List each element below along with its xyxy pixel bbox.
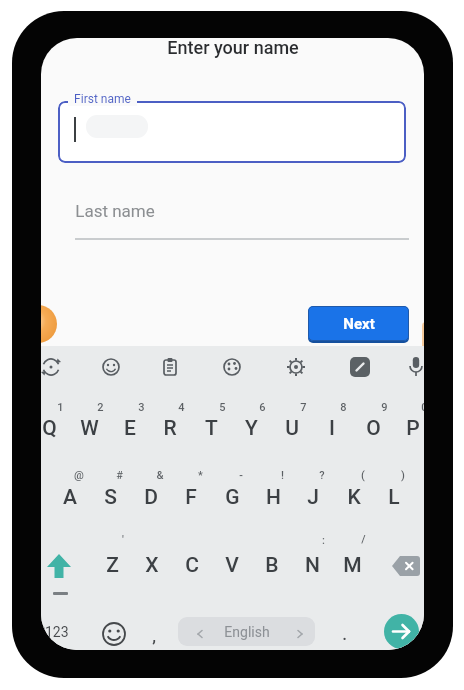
button[interactable] <box>58 198 406 242</box>
button[interactable]: N <box>292 550 332 580</box>
button[interactable] <box>350 357 370 377</box>
staticText: J <box>307 485 319 510</box>
button[interactable]: , <box>145 625 163 647</box>
staticText: A <box>63 485 77 510</box>
staticText: Y <box>245 416 258 441</box>
staticText: First name <box>74 92 131 106</box>
staticText: V <box>225 553 239 578</box>
staticText: O <box>366 416 381 441</box>
button[interactable]: ?123 <box>41 620 77 644</box>
staticText: P <box>406 416 420 441</box>
button[interactable]: P <box>393 413 424 443</box>
button[interactable]: K <box>334 482 374 512</box>
staticText: E <box>124 416 136 441</box>
staticText: 6 <box>259 401 266 414</box>
button[interactable]: English <box>178 617 315 646</box>
staticText: K <box>347 485 361 510</box>
staticText: F <box>185 485 197 510</box>
staticText: 3 <box>138 401 145 414</box>
button[interactable]: H <box>253 482 293 512</box>
staticText: Q <box>42 416 57 441</box>
staticText: ) <box>401 469 405 482</box>
button[interactable] <box>406 356 424 378</box>
button[interactable] <box>41 356 62 378</box>
staticText: ? <box>319 469 325 482</box>
staticText: D <box>144 485 158 510</box>
staticText: Next <box>343 315 375 333</box>
staticText: N <box>305 553 320 578</box>
staticText: L <box>388 485 400 510</box>
button[interactable]: B <box>252 550 292 580</box>
staticText: 9 <box>381 401 388 414</box>
staticText: 5 <box>219 401 226 414</box>
staticText: W <box>80 416 99 441</box>
button[interactable] <box>101 621 127 647</box>
staticText: I <box>329 416 335 441</box>
staticText: ! <box>281 469 284 482</box>
button[interactable]: X <box>132 550 172 580</box>
staticText: Z <box>106 553 119 578</box>
staticText: C <box>185 553 199 578</box>
button[interactable] <box>222 357 242 377</box>
button[interactable]: U <box>272 413 312 443</box>
button[interactable] <box>47 554 71 579</box>
staticText: . <box>342 624 347 644</box>
staticText: # <box>116 469 123 482</box>
button[interactable] <box>101 357 121 377</box>
button[interactable]: O <box>353 413 393 443</box>
staticText: 8 <box>340 401 347 414</box>
staticText: 2 <box>97 401 104 414</box>
staticText: / <box>361 533 366 546</box>
staticText: U <box>285 416 299 441</box>
button[interactable]: G <box>212 482 252 512</box>
staticText: English <box>224 624 270 640</box>
button[interactable] <box>392 556 420 576</box>
staticText: ?123 <box>41 624 69 640</box>
button[interactable]: S <box>90 482 130 512</box>
staticText: M <box>343 553 362 578</box>
button[interactable]: J <box>293 482 333 512</box>
button[interactable]: C <box>172 550 212 580</box>
staticText: 0 <box>421 401 424 414</box>
button[interactable] <box>384 614 419 649</box>
staticText: * <box>198 469 203 482</box>
button[interactable]: R <box>150 413 190 443</box>
button[interactable]: T <box>191 413 231 443</box>
staticText: T <box>205 416 218 441</box>
staticText: - <box>239 469 243 482</box>
button[interactable]: I <box>312 413 352 443</box>
staticText: 1 <box>57 401 64 414</box>
staticText: R <box>163 416 177 441</box>
staticText: Last name <box>75 201 155 221</box>
staticText: 4 <box>178 401 185 414</box>
staticText: H <box>266 485 281 510</box>
button[interactable]: D <box>131 482 171 512</box>
staticText: B <box>265 553 279 578</box>
staticText: 7 <box>300 401 307 414</box>
staticText: S <box>104 485 117 510</box>
button[interactable]: . <box>335 623 353 645</box>
staticText: : <box>322 534 325 547</box>
staticText: , <box>152 626 156 646</box>
staticText: G <box>225 485 240 510</box>
button[interactable]: V <box>212 550 252 580</box>
button[interactable] <box>58 101 406 163</box>
button[interactable]: F <box>171 482 211 512</box>
button[interactable]: A <box>50 482 90 512</box>
staticText: Enter your name <box>167 38 299 58</box>
staticText: X <box>145 553 159 578</box>
staticText: @ <box>74 469 84 482</box>
button[interactable]: W <box>69 413 109 443</box>
staticText: & <box>156 469 164 482</box>
button[interactable]: Z <box>92 550 132 580</box>
button[interactable]: Q <box>41 413 69 443</box>
staticText: ' <box>122 533 124 546</box>
button[interactable] <box>285 356 307 378</box>
button[interactable] <box>160 357 180 377</box>
button[interactable]: Y <box>231 413 271 443</box>
button[interactable]: L <box>374 482 414 512</box>
button[interactable]: M <box>332 550 372 580</box>
button[interactable]: E <box>110 413 150 443</box>
button[interactable]: Next <box>308 306 409 341</box>
staticText: ( <box>361 469 365 482</box>
